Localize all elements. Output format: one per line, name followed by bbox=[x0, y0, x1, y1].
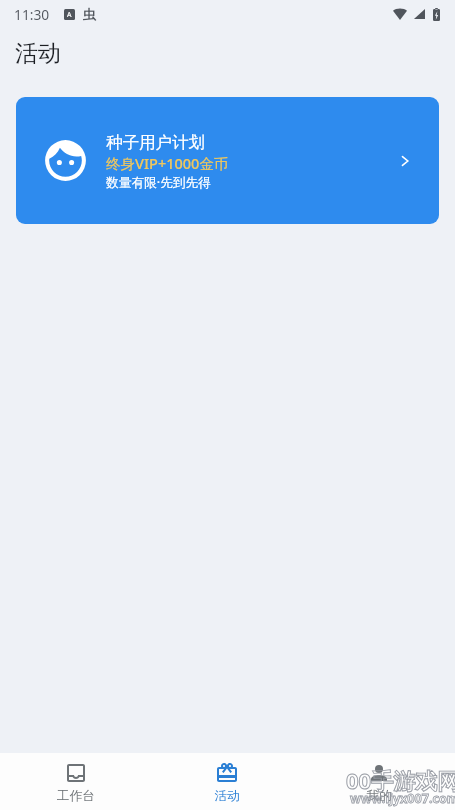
staticText: 活动 bbox=[15, 39, 61, 68]
staticText: 数量有限·先到先得 bbox=[106, 173, 211, 190]
button[interactable]: 我的 bbox=[303, 753, 455, 810]
staticText: 种子用户计划 bbox=[106, 132, 205, 153]
button[interactable]: 种子用户计划 bbox=[16, 97, 439, 224]
staticText: A bbox=[67, 10, 72, 20]
staticText: 活动 bbox=[214, 788, 240, 804]
staticText: 终身VIP+1000金币 bbox=[106, 153, 229, 173]
staticText: 虫 bbox=[83, 6, 96, 22]
staticText: 00手游戏网 bbox=[346, 765, 455, 795]
button[interactable]: 活动 bbox=[151, 753, 303, 810]
other: Mobile signal bbox=[413, 8, 425, 20]
other: Wi-Fi bbox=[393, 7, 407, 21]
other: 查看详情 bbox=[398, 154, 412, 168]
staticText: www.ljyx007.com bbox=[350, 790, 455, 807]
staticText: 我的 bbox=[366, 788, 392, 804]
staticText: 工作台 bbox=[57, 788, 95, 804]
staticText: 11:30 bbox=[14, 5, 50, 24]
button[interactable]: 工作台 bbox=[0, 753, 151, 810]
other: Battery charging bbox=[433, 8, 440, 21]
